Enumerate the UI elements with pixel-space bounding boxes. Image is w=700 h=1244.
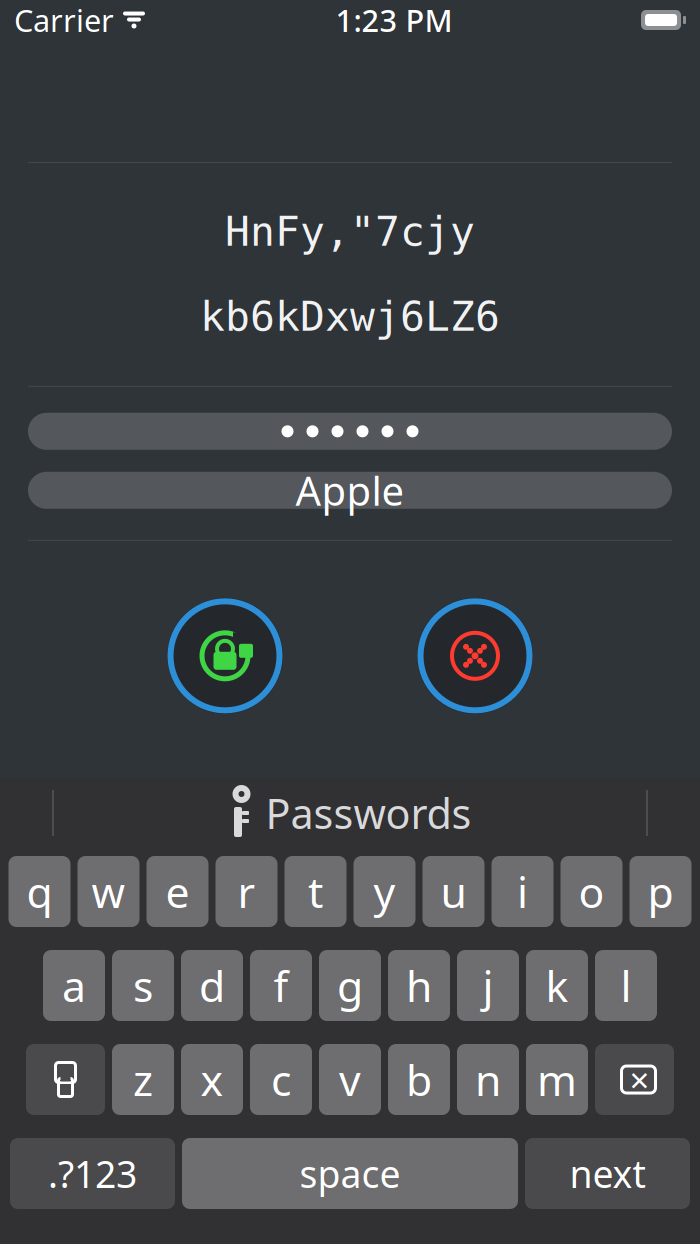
button[interactable]: c	[250, 1044, 312, 1115]
button[interactable]: v	[319, 1044, 381, 1115]
button[interactable]: m	[526, 1044, 588, 1115]
staticText: Passwords	[265, 786, 471, 840]
button[interactable]: next	[525, 1138, 690, 1209]
button[interactable]: k	[526, 950, 588, 1021]
button[interactable]: p	[629, 856, 691, 927]
staticText: 1:23 PM	[335, 0, 452, 40]
button[interactable]: Delete	[595, 1044, 674, 1115]
staticText: u	[440, 863, 466, 920]
button[interactable]: w	[77, 856, 139, 927]
button[interactable]: z	[112, 1044, 174, 1115]
staticText: s	[133, 957, 153, 1014]
staticText: a	[62, 957, 86, 1014]
staticText: p	[647, 863, 673, 920]
staticText: m	[537, 1051, 577, 1108]
staticText: c	[271, 1051, 291, 1108]
button[interactable]: u	[422, 856, 484, 927]
staticText: t	[308, 863, 323, 920]
staticText: kb6kDxwj6LZ6	[200, 293, 500, 340]
staticText: b	[406, 1051, 432, 1108]
button[interactable]: d	[181, 950, 243, 1021]
staticText: .?123	[48, 1149, 137, 1198]
button[interactable]: i	[491, 856, 553, 927]
staticText: x	[200, 1051, 223, 1108]
button[interactable]: l	[595, 950, 657, 1021]
staticText: j	[482, 957, 493, 1014]
button[interactable]: s	[112, 950, 174, 1021]
staticText: i	[517, 863, 528, 920]
button[interactable]: j	[457, 950, 519, 1021]
staticText: h	[406, 957, 432, 1014]
staticText: next	[569, 1149, 645, 1198]
button[interactable]: Use strong password	[165, 596, 285, 716]
button[interactable]: e	[146, 856, 208, 927]
button[interactable]: h	[388, 950, 450, 1021]
staticText: w	[91, 863, 125, 920]
staticText: space	[299, 1149, 400, 1198]
button[interactable]: t	[284, 856, 346, 927]
staticText: Apple	[295, 464, 404, 517]
button[interactable]: b	[388, 1044, 450, 1115]
button[interactable]	[0, 413, 700, 450]
button[interactable]: x	[181, 1044, 243, 1115]
button[interactable]: f	[250, 950, 312, 1021]
staticText: f	[273, 957, 288, 1014]
staticText: y	[373, 863, 395, 920]
staticText: g	[337, 957, 363, 1014]
button[interactable]: .?123	[10, 1138, 175, 1209]
button[interactable]: n	[457, 1044, 519, 1115]
staticText: v	[339, 1051, 361, 1108]
button[interactable]: a	[43, 950, 105, 1021]
button[interactable]: space	[182, 1138, 518, 1209]
staticText: k	[545, 957, 568, 1014]
staticText: HnFy,"7cjy	[225, 208, 475, 255]
button[interactable]: r	[215, 856, 277, 927]
staticText: r	[237, 863, 255, 920]
staticText: e	[165, 863, 189, 920]
staticText: d	[199, 957, 225, 1014]
staticText: z	[133, 1051, 153, 1108]
staticText: ×	[629, 1056, 649, 1102]
button[interactable]: g	[319, 950, 381, 1021]
staticText: l	[620, 957, 631, 1014]
button[interactable]: y	[353, 856, 415, 927]
button[interactable]: o	[560, 856, 622, 927]
staticText: o	[578, 863, 604, 920]
button[interactable]: Passwords	[212, 782, 487, 844]
button[interactable]: Shift	[26, 1044, 105, 1115]
staticText: Carrier	[14, 0, 114, 40]
staticText: n	[475, 1051, 501, 1108]
button[interactable]: Apple	[0, 472, 700, 509]
button[interactable]: Don't use strong password	[415, 596, 535, 716]
button[interactable]: q	[8, 856, 70, 927]
staticText: q	[26, 863, 52, 920]
